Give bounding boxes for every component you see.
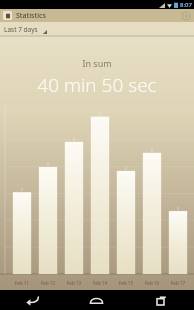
staticText: Last 7 days [4, 25, 38, 34]
button[interactable]: App icon [0, 9, 194, 22]
staticText: Feb 13 [67, 280, 81, 286]
staticText: 40 min 50 sec [37, 72, 157, 98]
staticText: Statistics [16, 11, 46, 21]
staticText: In sum [82, 57, 112, 69]
other: App icon [3, 11, 12, 20]
staticText: 8:07 [180, 1, 192, 9]
staticText: Feb 16 [145, 280, 159, 286]
staticText: Feb 17 [171, 280, 185, 286]
button[interactable]: More options [180, 10, 191, 21]
button[interactable]: Back [0, 290, 64, 310]
staticText: Feb 11 [15, 280, 29, 286]
button[interactable]: Home [64, 290, 129, 310]
staticText: Feb 12 [41, 280, 55, 286]
button[interactable]: Last 7 days [4, 25, 47, 34]
button[interactable]: Recent apps [129, 290, 194, 310]
staticText: Feb 15 [119, 280, 133, 286]
staticText: Feb 14 [93, 280, 107, 286]
